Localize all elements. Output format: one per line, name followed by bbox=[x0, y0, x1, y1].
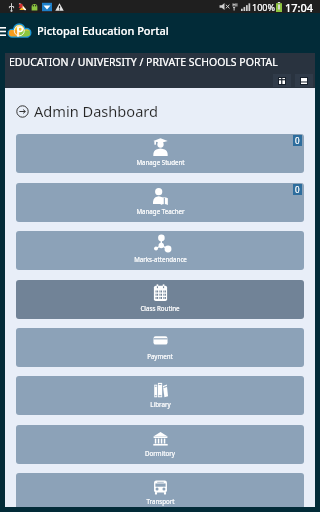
button[interactable]: Menu bbox=[0, 24, 6, 38]
staticText: Manage Student bbox=[136, 158, 185, 166]
staticText: Admin Dashboard bbox=[34, 101, 159, 121]
staticText: 0 bbox=[295, 135, 300, 146]
button[interactable]: Class Routine bbox=[16, 280, 304, 319]
button[interactable]: Dormitory bbox=[16, 425, 304, 464]
staticText: Dormitory bbox=[145, 449, 175, 457]
button[interactable]: Grid view bbox=[273, 74, 291, 87]
button[interactable]: Library bbox=[16, 376, 304, 415]
staticText: 17:04 bbox=[285, 0, 314, 13]
staticText: Manage Teacher bbox=[136, 207, 185, 215]
staticText: Class Routine bbox=[140, 304, 180, 312]
button[interactable]: Marks-attendance bbox=[16, 231, 304, 270]
staticText: Marks-attendance bbox=[134, 255, 187, 263]
staticText: Payment bbox=[147, 352, 173, 360]
button[interactable]: Payment bbox=[16, 328, 304, 367]
staticText: Pictopal Education Portal bbox=[37, 23, 169, 38]
button[interactable]: Transport bbox=[16, 473, 304, 507]
staticText: 100% bbox=[252, 1, 275, 13]
staticText: EDUCATION / UNIVERSITY / PRIVATE SCHOOLS… bbox=[9, 55, 278, 69]
staticText: 0 bbox=[295, 184, 300, 195]
staticText: Library bbox=[150, 400, 171, 408]
staticText: Transport bbox=[146, 497, 175, 505]
button[interactable]: List view bbox=[295, 74, 313, 87]
button[interactable]: Manage Teacher bbox=[16, 183, 304, 222]
button[interactable]: Manage Student bbox=[16, 134, 304, 173]
